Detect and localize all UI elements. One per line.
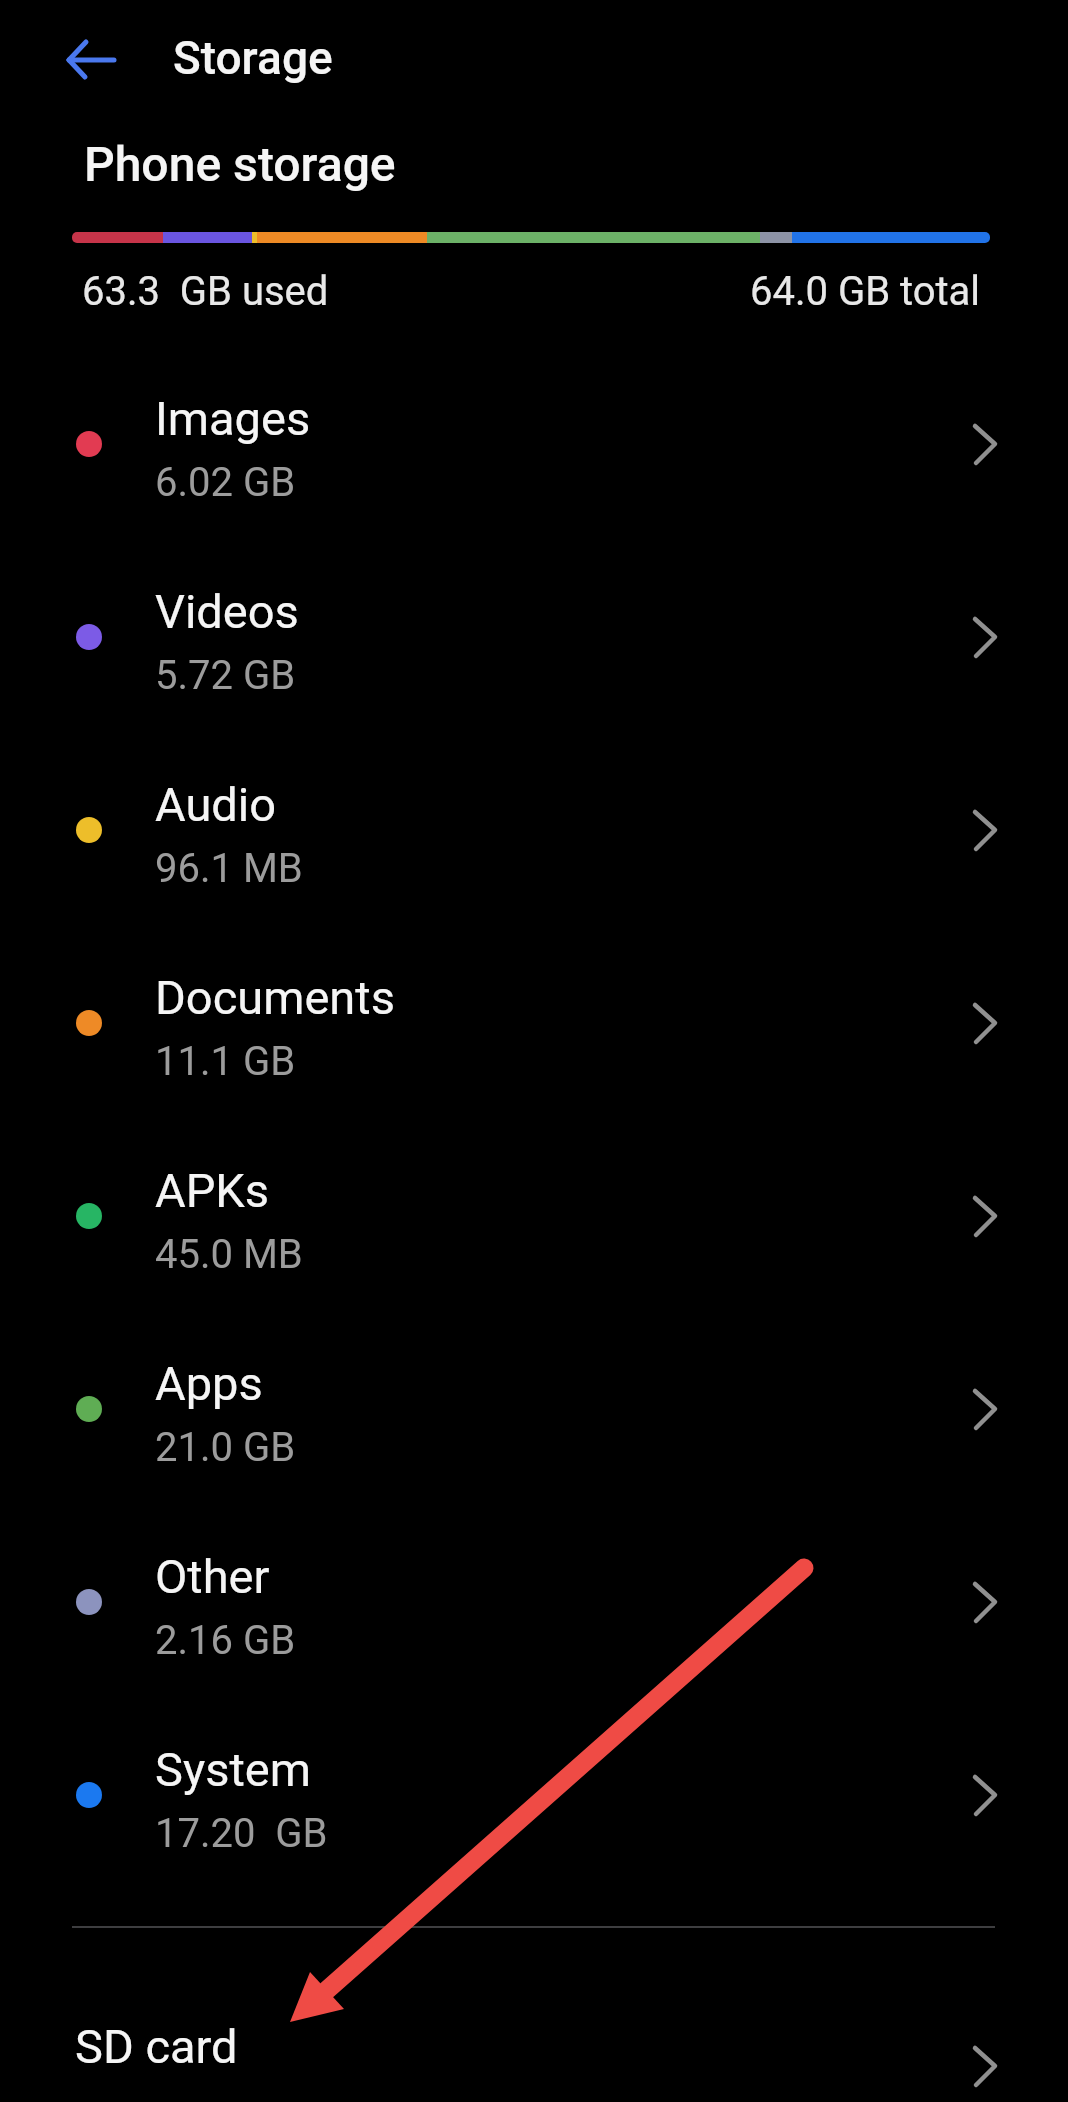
- staticText: System: [155, 1742, 311, 1797]
- staticText: APKs: [155, 1163, 270, 1218]
- staticText: 2.16 GB: [155, 1617, 296, 1664]
- staticText: Audio: [155, 777, 277, 832]
- staticText: Other: [155, 1549, 270, 1604]
- button[interactable]: [52, 32, 132, 88]
- staticText: 96.1 MB: [155, 845, 303, 892]
- staticText: Images: [155, 391, 311, 446]
- staticText: 11.1 GB: [155, 1038, 296, 1085]
- button[interactable]: Other: [0, 1506, 1068, 1699]
- staticText: 21.0 GB: [155, 1424, 296, 1471]
- button[interactable]: Apps: [0, 1313, 1068, 1506]
- staticText: 5.72 GB: [155, 652, 296, 699]
- button[interactable]: Videos: [0, 541, 1068, 734]
- button[interactable]: System: [0, 1699, 1068, 1892]
- button[interactable]: SD card: [0, 1944, 1068, 2102]
- staticText: 17.20 GB: [155, 1810, 328, 1857]
- button[interactable]: Audio: [0, 734, 1068, 927]
- staticText: Videos: [155, 584, 299, 639]
- button[interactable]: Images: [0, 348, 1068, 541]
- button[interactable]: APKs: [0, 1120, 1068, 1313]
- staticText: Storage: [173, 31, 333, 85]
- staticText: 63.3 GB used: [82, 268, 329, 315]
- staticText: Documents: [155, 970, 395, 1025]
- staticText: SD card: [75, 2019, 238, 2074]
- staticText: Apps: [155, 1356, 263, 1411]
- staticText: 64.0 GB total: [750, 268, 981, 315]
- staticText: 6.02 GB: [155, 459, 296, 506]
- staticText: 45.0 MB: [155, 1231, 303, 1278]
- button[interactable]: Documents: [0, 927, 1068, 1120]
- staticText: Phone storage: [84, 136, 396, 192]
